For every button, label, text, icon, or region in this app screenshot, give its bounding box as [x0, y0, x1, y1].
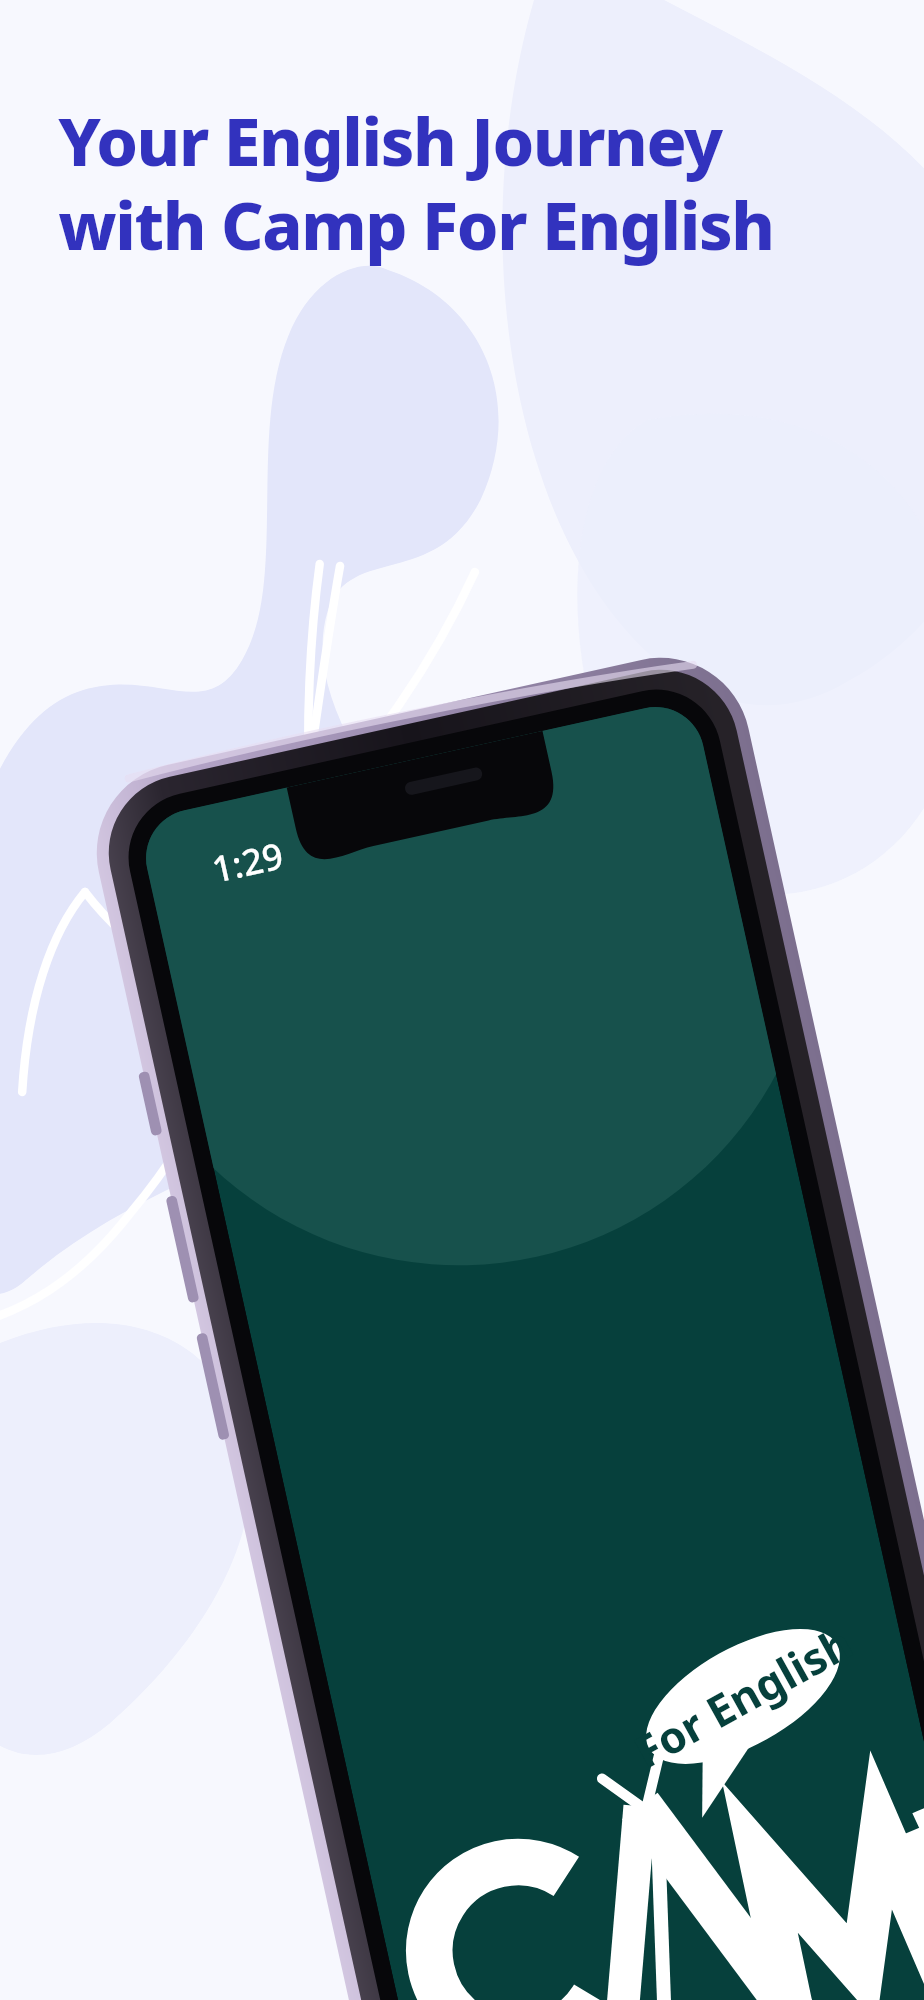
button[interactable]: Camp For English promo screen: [0, 0, 924, 2000]
